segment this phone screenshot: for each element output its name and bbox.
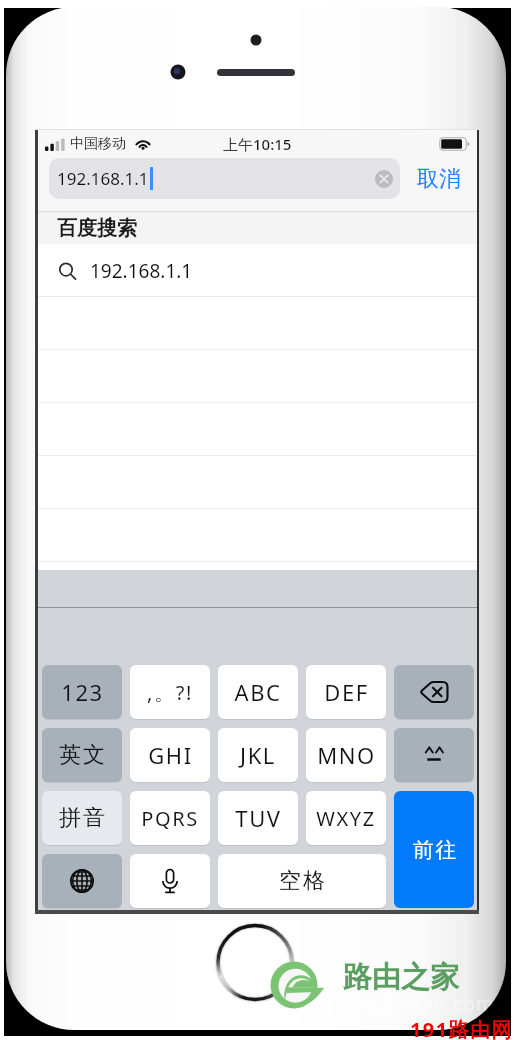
staticText: ABC: [234, 677, 282, 707]
button[interactable]: JKL: [218, 728, 298, 782]
button[interactable]: ,。?!: [130, 665, 210, 719]
button[interactable]: 拼音: [42, 791, 122, 845]
staticText: 取消: [417, 165, 461, 193]
staticText: PQRS: [141, 805, 199, 832]
staticText: 前往: [412, 837, 457, 863]
staticText: 123: [61, 677, 104, 707]
button[interactable]: PQRS: [130, 791, 210, 845]
button[interactable]: Switch keyboard: [42, 854, 122, 908]
button[interactable]: Emoticons: [394, 728, 474, 782]
button[interactable]: 前往: [394, 791, 474, 908]
staticText: 192.168.1.1: [57, 167, 149, 190]
button[interactable]: 取消: [411, 158, 467, 199]
staticText: GHI: [148, 740, 193, 770]
button[interactable]: 123: [42, 665, 122, 719]
staticText: WXYZ: [316, 805, 376, 832]
staticText: 百度搜索: [57, 216, 137, 241]
staticText: 拼音: [58, 804, 106, 832]
button[interactable]: TUV: [218, 791, 298, 845]
staticText: 上午10:15: [223, 134, 292, 154]
button[interactable]: DEF: [306, 665, 386, 719]
staticText: 191路由网: [410, 1016, 513, 1040]
staticText: 192.168.1.1: [90, 258, 193, 284]
button[interactable]: Voice input: [130, 854, 210, 908]
staticText: MNO: [317, 740, 376, 770]
button[interactable]: 192.168.1.1: [38, 244, 477, 297]
button[interactable]: Delete: [394, 665, 474, 719]
staticText: www.hhhyh.com: [330, 991, 495, 1017]
button[interactable]: GHI: [130, 728, 210, 782]
button[interactable]: ABC: [218, 665, 298, 719]
staticText: JKL: [240, 740, 276, 770]
button[interactable]: 空格: [218, 854, 386, 908]
button[interactable]: Clear text: [375, 170, 393, 188]
staticText: DEF: [324, 677, 369, 707]
button[interactable]: 英文: [42, 728, 122, 782]
button[interactable]: MNO: [306, 728, 386, 782]
staticText: ,。?!: [147, 679, 193, 706]
staticText: 空格: [278, 867, 326, 895]
staticText: TUV: [235, 803, 282, 833]
staticText: 中国移动: [70, 135, 126, 153]
staticText: 路由之家: [343, 959, 459, 996]
staticText: 英文: [58, 741, 106, 769]
button[interactable]: 192.168.1.1: [49, 158, 400, 199]
button[interactable]: WXYZ: [306, 791, 386, 845]
